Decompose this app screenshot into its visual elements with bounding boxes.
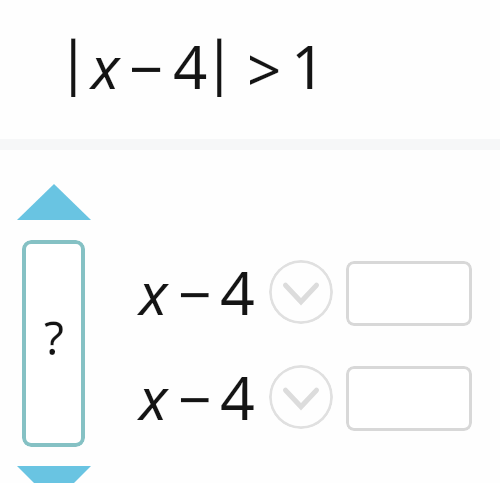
staticText: |: [57, 20, 90, 100]
staticText: x: [139, 357, 168, 437]
staticText: |: [203, 20, 236, 100]
staticText: >: [247, 28, 282, 110]
button[interactable]: Answer field: [346, 261, 472, 326]
staticText: ?: [44, 306, 64, 369]
staticText: −: [178, 358, 212, 438]
button[interactable]: ?: [22, 240, 85, 447]
button[interactable]: Answer field: [346, 366, 472, 431]
staticText: 4: [220, 250, 255, 333]
staticText: 1: [291, 25, 326, 107]
staticText: −: [129, 27, 164, 109]
staticText: −: [178, 253, 212, 333]
staticText: 4: [173, 25, 208, 107]
staticText: x: [91, 26, 120, 106]
staticText: 4: [220, 355, 255, 438]
staticText: x: [139, 252, 168, 332]
button[interactable]: Scroll up: [17, 184, 91, 220]
button[interactable]: Scroll down: [17, 466, 91, 483]
button[interactable]: Choose comparison operator: [269, 365, 333, 429]
button[interactable]: Choose comparison operator: [269, 260, 333, 324]
